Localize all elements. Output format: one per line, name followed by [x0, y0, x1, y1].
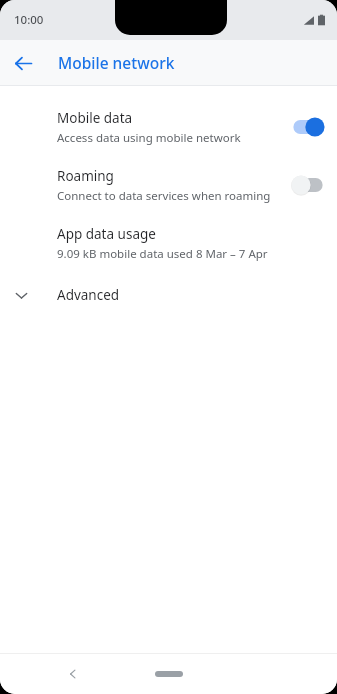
staticText: Advanced	[57, 286, 120, 304]
staticText: App data usage	[57, 225, 156, 243]
button[interactable]: Home	[141, 663, 197, 685]
staticText: 10:00	[14, 12, 44, 28]
button[interactable]: Back	[58, 659, 88, 689]
staticText: Connect to data services when roaming	[57, 188, 271, 204]
button[interactable]: Advanced	[0, 272, 337, 318]
button[interactable]: Toggle off	[291, 173, 325, 197]
staticText: Mobile data	[57, 109, 133, 127]
staticText: Roaming	[57, 167, 114, 185]
button[interactable]: Toggle on	[291, 115, 325, 139]
button[interactable]: Mobile data	[0, 98, 337, 156]
button[interactable]: Roaming	[0, 156, 337, 214]
staticText: Mobile network	[58, 52, 175, 73]
button[interactable]: App data usage	[0, 214, 337, 272]
staticText: 9.09 kB mobile data used 8 Mar – 7 Apr	[57, 246, 268, 262]
staticText: Access data using mobile network	[57, 130, 241, 146]
button[interactable]: Back	[7, 47, 39, 79]
